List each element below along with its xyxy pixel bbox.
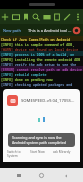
button[interactable]: [INFO] installing the remote android ADB… [0, 56, 83, 61]
staticText: [INFO] rebuild complete [1, 72, 47, 76]
staticText: [INFO] process is 100% of a build, on bu… [1, 52, 83, 56]
button[interactable]: [ERROR] cannot resolve path on adb devic… [0, 66, 83, 71]
button[interactable]: Switch to System [7, 150, 30, 158]
button[interactable]: Start Now [30, 150, 53, 154]
button[interactable]: Back [60, 170, 71, 181]
staticText: SOMESPEED-v9.04_1705Sync [21, 98, 76, 104]
staticText: Switch to System [7, 150, 21, 158]
staticText: [ERROR] cannot resolve path on adb devic… [1, 67, 83, 71]
button[interactable]: Folder [11, 12, 21, 22]
staticText: [INFO] this is sample command of ADB, ch… [1, 42, 83, 46]
staticText: Scanning and sync is now the Android sys… [12, 135, 71, 145]
button[interactable]: SOMESPEED-v9.04_1705Sync [7, 95, 76, 106]
button[interactable]: Print [52, 12, 62, 22]
button[interactable]: [INFO] this is sample command of ADB, ch… [0, 41, 83, 46]
staticText: This is a Android tool set [28, 28, 72, 33]
button[interactable]: Recent apps [13, 170, 24, 181]
button[interactable]: Record [72, 26, 81, 35]
button[interactable]: More [73, 12, 83, 22]
button[interactable]: New path [0, 24, 83, 36]
button[interactable]: [WARN] device not found on local device [0, 46, 83, 51]
button[interactable]: [INFO] rebuild complete [0, 71, 83, 76]
button[interactable]: Search [31, 12, 41, 22]
staticText: [INFO] checking updated packages and run… [1, 82, 83, 86]
button[interactable]: Add [0, 12, 10, 22]
button[interactable]: Scanning and sync is now the Android sys… [8, 133, 75, 147]
staticText: [INFO] done on pending now [1, 77, 53, 81]
button[interactable]: [INFO] verify the adb setup to see the e… [0, 61, 83, 66]
button[interactable]: [INFO] checking updated packages and run… [0, 81, 83, 86]
button[interactable]: [INFO] process is 100% of a build, on bu… [0, 51, 83, 56]
button[interactable]: Home [36, 170, 47, 181]
staticText: Start Now [30, 150, 45, 154]
button[interactable]: ask Mirardy [53, 150, 76, 154]
button[interactable]: Bookmark [21, 12, 31, 22]
staticText: [WARN] device not found on local device [1, 47, 79, 51]
staticText: [INFO] verify the adb setup to see the e… [1, 62, 83, 66]
staticText: [INFO] installing the remote android ADB… [1, 57, 83, 61]
staticText: Check if Java Comes/Path on Android vers… [1, 37, 83, 41]
button[interactable]: Check if Java Comes/Path on Android vers… [0, 36, 83, 41]
button[interactable]: [INFO] done on pending now [0, 76, 83, 81]
staticText: New path [3, 28, 22, 33]
staticText: ask Mirardy [53, 150, 71, 154]
button[interactable]: Edit [62, 12, 72, 22]
button[interactable]: Camera [42, 12, 52, 22]
